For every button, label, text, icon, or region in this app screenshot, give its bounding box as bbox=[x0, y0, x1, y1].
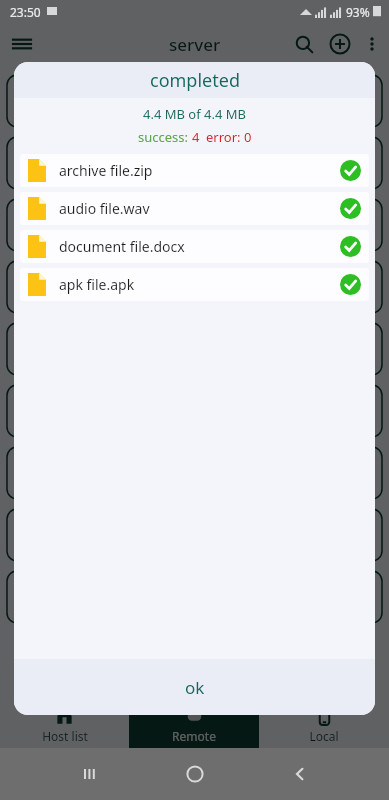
other: Completed bbox=[340, 236, 361, 257]
button[interactable]: Remote bbox=[129, 704, 259, 748]
staticText: Host list bbox=[42, 728, 88, 744]
staticText: success: bbox=[138, 128, 192, 146]
other: Completed bbox=[340, 198, 361, 219]
button[interactable]: apk file.apk bbox=[20, 268, 369, 301]
staticText: archive file.zip bbox=[59, 161, 153, 180]
staticText: audio file.wav bbox=[59, 199, 150, 218]
staticText: 4 bbox=[192, 128, 200, 146]
button[interactable]: ok bbox=[14, 659, 375, 715]
button[interactable]: More options bbox=[363, 35, 381, 53]
button[interactable]: Search bbox=[293, 33, 315, 55]
staticText: Local bbox=[309, 728, 339, 744]
staticText: 4.4 MB of 4.4 MB bbox=[143, 105, 247, 123]
button[interactable]: Local bbox=[259, 704, 389, 748]
staticText: ok bbox=[185, 676, 205, 699]
button[interactable]: audio file.wav bbox=[20, 192, 369, 225]
staticText: 23:50 bbox=[10, 4, 41, 20]
button[interactable]: Add bbox=[329, 33, 351, 55]
button[interactable]: Recents bbox=[80, 764, 100, 784]
other: Menu bbox=[10, 32, 34, 56]
staticText: 93% bbox=[346, 4, 370, 20]
staticText: 0 bbox=[244, 128, 252, 146]
button[interactable]: Back bbox=[290, 764, 310, 784]
button[interactable]: Home bbox=[185, 764, 205, 784]
other: Completed bbox=[340, 274, 361, 295]
staticText: document file.docx bbox=[59, 237, 185, 256]
button[interactable]: document file.docx bbox=[20, 230, 369, 263]
staticText: apk file.apk bbox=[59, 275, 135, 294]
staticText: server bbox=[169, 33, 221, 56]
button[interactable]: Host list bbox=[0, 704, 129, 748]
staticText: completed bbox=[150, 68, 240, 93]
staticText: error: bbox=[206, 128, 244, 146]
button[interactable]: archive file.zip bbox=[20, 154, 369, 187]
other: Completed bbox=[340, 160, 361, 181]
staticText: Remote bbox=[172, 728, 216, 744]
